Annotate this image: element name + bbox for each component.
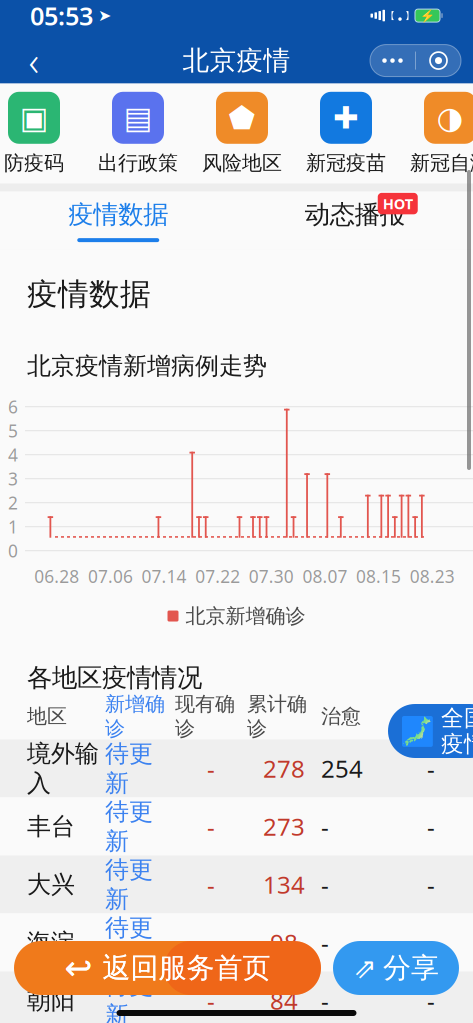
button[interactable]: ↩	[14, 941, 321, 995]
staticText: ⇗	[353, 952, 376, 984]
button[interactable]: ◑	[398, 92, 473, 175]
staticText: 出行政策	[98, 151, 178, 175]
staticText: 海淀	[27, 928, 75, 957]
staticText: 疫情	[441, 730, 473, 758]
button[interactable]: ⬟	[190, 92, 294, 175]
staticText: 新增确诊	[105, 692, 165, 741]
staticText: -	[207, 984, 215, 1016]
staticText: 疫情数据	[27, 276, 151, 313]
staticText: 5	[8, 419, 18, 442]
staticText: 273	[263, 810, 305, 842]
staticText: 返回服务首页	[102, 951, 270, 985]
staticText: -	[427, 752, 435, 784]
staticText: ⬟	[228, 100, 255, 135]
button[interactable]: ▤	[86, 92, 190, 175]
staticText: 08.23	[410, 565, 455, 588]
button[interactable]: ▣	[0, 92, 86, 175]
staticText: ✚	[333, 100, 359, 135]
staticText: 待更新	[105, 739, 153, 798]
staticText: -	[427, 926, 435, 958]
staticText: 风险地区	[202, 151, 282, 175]
button[interactable]: 新增确诊	[105, 692, 175, 741]
staticText: 治愈	[321, 704, 361, 729]
staticText: 3	[8, 467, 18, 490]
staticText: 254	[321, 752, 363, 784]
button[interactable]: 大兴	[0, 855, 473, 913]
staticText: 4	[8, 443, 18, 466]
staticText: 疫情数据	[68, 199, 168, 230]
staticText: 待更新	[105, 855, 153, 914]
button[interactable]: More	[370, 45, 415, 77]
staticText: 6	[8, 395, 18, 418]
staticText: 累计确诊	[247, 692, 307, 741]
staticText: 大兴	[27, 870, 75, 899]
staticText: ◑	[436, 100, 463, 135]
staticText: -	[321, 926, 329, 958]
staticText: 境外输入	[27, 739, 99, 798]
staticText: -	[321, 810, 329, 842]
staticText: 84	[270, 984, 298, 1016]
staticText: 全国	[441, 704, 473, 732]
button[interactable]: Close mini program	[416, 45, 461, 77]
staticText: 动态播报	[305, 199, 405, 230]
button[interactable]: 丰台	[0, 797, 473, 855]
staticText: 现有确诊	[175, 692, 235, 741]
staticText: 地区	[27, 704, 67, 729]
staticText: 07.22	[195, 565, 240, 588]
staticText: -	[207, 868, 215, 900]
button[interactable]: 🗾	[388, 704, 473, 758]
staticText: ↩	[64, 949, 92, 987]
staticText: ➤	[98, 6, 111, 25]
button[interactable]: Back	[12, 39, 56, 83]
staticText: ↩	[64, 949, 92, 987]
staticText: 07.06	[88, 565, 133, 588]
staticText: -	[321, 984, 329, 1016]
staticText: 🗾	[400, 715, 435, 747]
staticText: 朝阳	[27, 986, 75, 1015]
staticText: ▤	[123, 100, 152, 135]
button[interactable]: ✚	[294, 92, 398, 175]
staticText: 待更新	[105, 971, 153, 1023]
staticText: 0	[8, 539, 18, 562]
staticText: 各地区疫情情况	[27, 662, 202, 693]
staticText: 07.14	[142, 565, 187, 588]
staticText: 08.07	[302, 565, 347, 588]
staticText: 北京疫情新增病例走势	[27, 351, 267, 381]
staticText: 北京疫情	[182, 44, 290, 77]
staticText: 防疫码	[4, 151, 64, 175]
staticText: 丰台	[27, 812, 75, 841]
button[interactable]: 境外输入	[0, 739, 473, 797]
staticText: ⚡	[420, 9, 435, 22]
button[interactable]: 动态播报	[236, 192, 473, 250]
staticText: 08.15	[356, 565, 401, 588]
staticText: -	[207, 752, 215, 784]
staticText: 待更新	[105, 913, 153, 972]
staticText: 新冠自测	[410, 151, 473, 175]
staticText: 2	[8, 491, 18, 514]
staticText: 278	[263, 752, 305, 784]
staticText: 98	[270, 926, 298, 958]
staticText: -	[427, 984, 435, 1016]
staticText: ‹	[28, 34, 39, 87]
staticText: 待更新	[105, 797, 153, 856]
staticText: 北京新增确诊	[185, 604, 305, 628]
button[interactable]: ⇗	[333, 941, 459, 995]
staticText: 07.30	[249, 565, 294, 588]
staticText: -	[207, 926, 215, 958]
staticText: HOT	[383, 194, 413, 213]
staticText: 05:53	[30, 0, 93, 32]
staticText: -	[321, 868, 329, 900]
staticText: 新冠疫苗	[306, 151, 386, 175]
staticText: 06.28	[34, 565, 79, 588]
button[interactable]: 疫情数据	[0, 192, 236, 250]
staticText: ▣	[19, 100, 48, 135]
button[interactable]: 海淀	[0, 913, 473, 971]
staticText: 134	[263, 868, 305, 900]
staticText: -	[427, 810, 435, 842]
staticText: -	[207, 810, 215, 842]
staticText: 分享	[383, 951, 439, 985]
staticText: -	[427, 868, 435, 900]
staticText: 1	[8, 515, 18, 538]
button[interactable]: 朝阳	[0, 971, 473, 1023]
staticText: 返回服务首页	[102, 951, 270, 985]
